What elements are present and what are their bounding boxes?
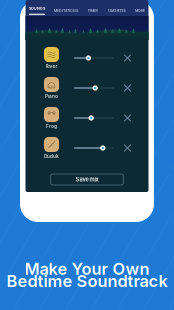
staticText: TIMER [87,8,97,13]
staticText: Make Your Own [24,259,149,279]
staticText: FAVORITES [107,8,125,13]
button[interactable]: Remove Frog [121,112,133,124]
button[interactable]: Frog [36,100,66,130]
button[interactable]: MEDITATIONS [54,0,78,16]
staticText: Duduk [44,153,59,159]
staticText: Bedtime Soundtrack [6,271,167,291]
staticText: Piano [45,93,58,99]
staticText: River [45,63,57,69]
staticText: Frog [46,123,57,129]
button[interactable]: TIMER [87,0,98,16]
staticText: MEDITATIONS [54,8,78,13]
button[interactable]: Remove Duduk [121,142,133,154]
button[interactable]: FAVORITES [107,0,126,16]
staticText: SOUNDS [29,6,45,11]
button[interactable]: River [36,40,66,70]
button[interactable]: Save mix [50,174,123,185]
button[interactable]: MORE [135,0,145,16]
button[interactable]: Duduk [36,130,66,160]
button[interactable]: SOUNDS [29,0,45,16]
button[interactable]: Remove River [121,52,133,64]
button[interactable]: Remove Piano [121,82,133,94]
staticText: MORE [135,8,145,13]
staticText: Save mix [75,176,98,183]
button[interactable]: Piano [36,70,66,100]
